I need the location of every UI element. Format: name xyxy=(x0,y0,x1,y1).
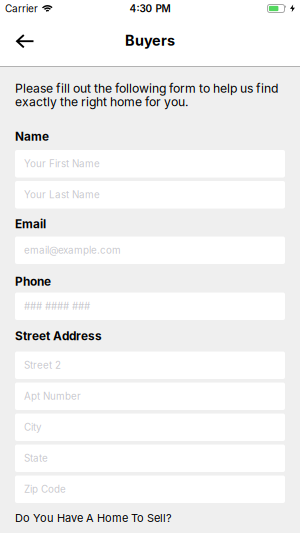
button[interactable]: City xyxy=(15,413,285,441)
staticText: Street Address xyxy=(15,329,102,343)
staticText: email@example.com xyxy=(24,244,121,256)
button[interactable]: Back xyxy=(0,23,44,60)
staticText: Apt Number xyxy=(24,390,81,402)
staticText: Your Last Name xyxy=(24,189,100,201)
button[interactable]: Zip Code xyxy=(15,475,285,503)
button[interactable]: State xyxy=(15,444,285,472)
staticText: Do You Have A Home To Sell? xyxy=(15,511,172,525)
staticText: ### #### ### xyxy=(24,300,90,312)
staticText: Buyers xyxy=(125,32,175,49)
staticText: Please fill out the following form to he… xyxy=(15,81,278,96)
staticText: City xyxy=(24,421,42,433)
button[interactable]: Your Last Name xyxy=(15,181,285,208)
staticText: State xyxy=(24,452,48,464)
staticText: Carrier xyxy=(5,2,38,15)
staticText: Phone xyxy=(15,274,51,289)
button[interactable]: ### #### ### xyxy=(15,292,285,320)
staticText: Name xyxy=(15,129,49,144)
staticText: Your First Name xyxy=(24,158,100,170)
staticText: Zip Code xyxy=(24,483,66,495)
staticText: 4:30 PM xyxy=(129,2,170,15)
staticText: exactly the right home for you. xyxy=(15,94,189,109)
button[interactable]: Apt Number xyxy=(15,382,285,410)
staticText: Email xyxy=(15,217,46,231)
button[interactable]: Your First Name xyxy=(15,150,285,177)
button[interactable]: email@example.com xyxy=(15,236,285,264)
staticText: Street 2 xyxy=(24,359,61,371)
button[interactable]: Street 2 xyxy=(15,351,285,379)
